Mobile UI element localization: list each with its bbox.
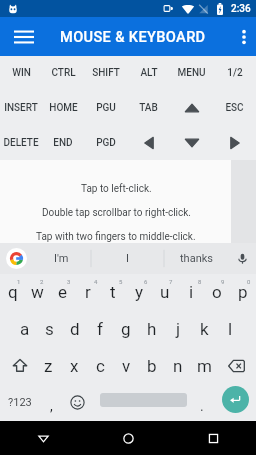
button[interactable]: Voice input [228,243,256,274]
button[interactable]: j [165,310,191,347]
staticText: q [8,282,18,302]
button[interactable]: Right [213,125,256,160]
button[interactable]: thanks [164,243,228,274]
staticText: INSERT [4,102,38,114]
button[interactable]: HOME [42,90,84,125]
button[interactable]: Google [0,243,32,274]
button[interactable]: k [191,310,217,347]
staticText: h [147,319,157,339]
staticText: Tap to left-click. [81,183,152,195]
other: Up [185,102,199,114]
staticText: l [228,319,233,339]
button[interactable]: ALT [127,56,170,90]
button[interactable]: MENU [170,56,213,90]
staticText: d [70,319,80,339]
staticText: END [53,137,73,149]
button[interactable]: I [91,243,164,274]
button[interactable]: PGD [84,125,127,160]
button[interactable]: Shift [0,347,35,384]
button[interactable]: Left [127,125,170,160]
button[interactable]: y [126,274,152,310]
button[interactable]: TAB [127,90,170,125]
button[interactable]: m [191,347,217,384]
button[interactable]: z [35,347,61,384]
staticText: v [122,356,131,376]
staticText: p [238,282,248,302]
button[interactable]: . [189,384,215,421]
button[interactable]: , [39,384,64,421]
button[interactable]: Backspace [217,347,256,384]
staticText: o [212,282,222,302]
button[interactable]: e [50,274,75,310]
staticText: I'm [54,252,69,265]
button[interactable]: Up [170,90,213,125]
staticText: c [96,356,105,376]
staticText: 6 [144,278,148,285]
button[interactable]: h [139,310,165,347]
button[interactable]: n [165,347,191,384]
button[interactable]: l [217,310,243,347]
button[interactable]: b [139,347,165,384]
staticText: thanks [180,252,213,265]
button[interactable]: INSERT [0,90,42,125]
button[interactable]: ESC [213,90,256,125]
staticText: j [176,319,181,339]
button[interactable]: WIN [0,56,42,90]
staticText: f [97,319,103,339]
button[interactable]: PGU [84,90,127,125]
button[interactable]: f [87,310,113,347]
staticText: 7 [169,278,173,285]
button[interactable]: r [75,274,100,310]
staticText: 2 [40,278,44,285]
staticText: x [70,356,79,376]
staticText: 5 [119,278,123,285]
button[interactable]: Down [170,125,213,160]
staticText: s [45,319,54,339]
button[interactable]: u [152,274,178,310]
staticText: w [31,282,44,302]
other: Down [185,137,199,149]
staticText: ?123 [8,396,32,409]
button[interactable]: v [113,347,139,384]
staticText: MOUSE & KEYBOARD [60,28,206,45]
staticText: 4 [94,278,98,285]
button[interactable]: d [62,310,87,347]
button[interactable]: SHIFT [84,56,127,90]
button[interactable]: More options [232,17,256,56]
staticText: t [110,282,116,302]
staticText: m [197,356,212,376]
button[interactable]: Emoji [64,384,90,421]
button[interactable]: s [37,310,62,347]
button[interactable]: Back [0,421,86,455]
staticText: WIN [12,67,31,79]
button[interactable]: i [178,274,204,310]
button[interactable]: DELETE [0,125,42,160]
button[interactable]: x [61,347,87,384]
button[interactable]: Home [86,421,171,455]
button[interactable]: 1/2 [213,56,256,90]
staticText: 1 [17,278,21,285]
button[interactable]: g [113,310,139,347]
button[interactable]: Enter [215,384,256,421]
button[interactable]: CTRL [42,56,84,90]
button[interactable]: I'm [32,243,91,274]
button[interactable]: Recent apps [171,421,256,455]
button[interactable]: p [230,274,256,310]
button[interactable]: END [42,125,84,160]
staticText: CTRL [51,67,76,79]
staticText: Tap with two fingers to middle-click. [36,231,196,243]
button[interactable]: o [204,274,230,310]
button[interactable]: ?123 [0,384,39,421]
staticText: a [20,319,30,339]
button[interactable]: a [12,310,37,347]
button[interactable]: t [100,274,126,310]
button[interactable]: q [0,274,25,310]
button[interactable]: Open navigation menu [0,17,47,56]
button[interactable]: Space [90,384,189,421]
staticText: e [58,282,68,302]
button[interactable]: w [25,274,50,310]
button[interactable]: Tap to left-click. [0,160,231,243]
staticText: PGU [96,102,116,114]
button[interactable]: c [87,347,113,384]
